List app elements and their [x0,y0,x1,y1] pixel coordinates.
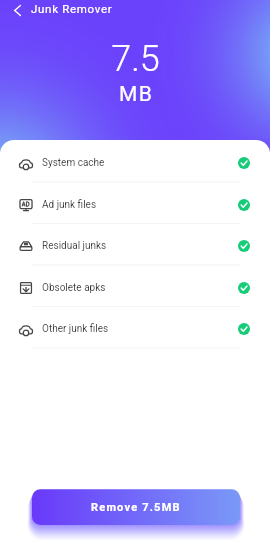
button[interactable]: Other junk files [0,306,270,348]
staticText: Junk Remover [31,2,113,15]
staticText: Ad junk files [42,199,97,211]
button[interactable]: Ad junk files [0,182,270,224]
staticText: Obsolete apks [42,282,106,294]
staticText: Remove 7.5MB [91,501,181,514]
staticText: MB [119,82,153,107]
button[interactable]: Residual junks [0,223,270,265]
staticText: System cache [42,157,105,169]
staticText: Residual junks [42,240,107,252]
button[interactable]: Back [6,0,28,21]
staticText: 7.5 [111,38,160,80]
staticText: Other junk files [42,323,109,335]
button[interactable]: Remove 7.5MB [32,489,240,525]
button[interactable]: System cache [0,140,270,182]
button[interactable]: Obsolete apks [0,265,270,307]
